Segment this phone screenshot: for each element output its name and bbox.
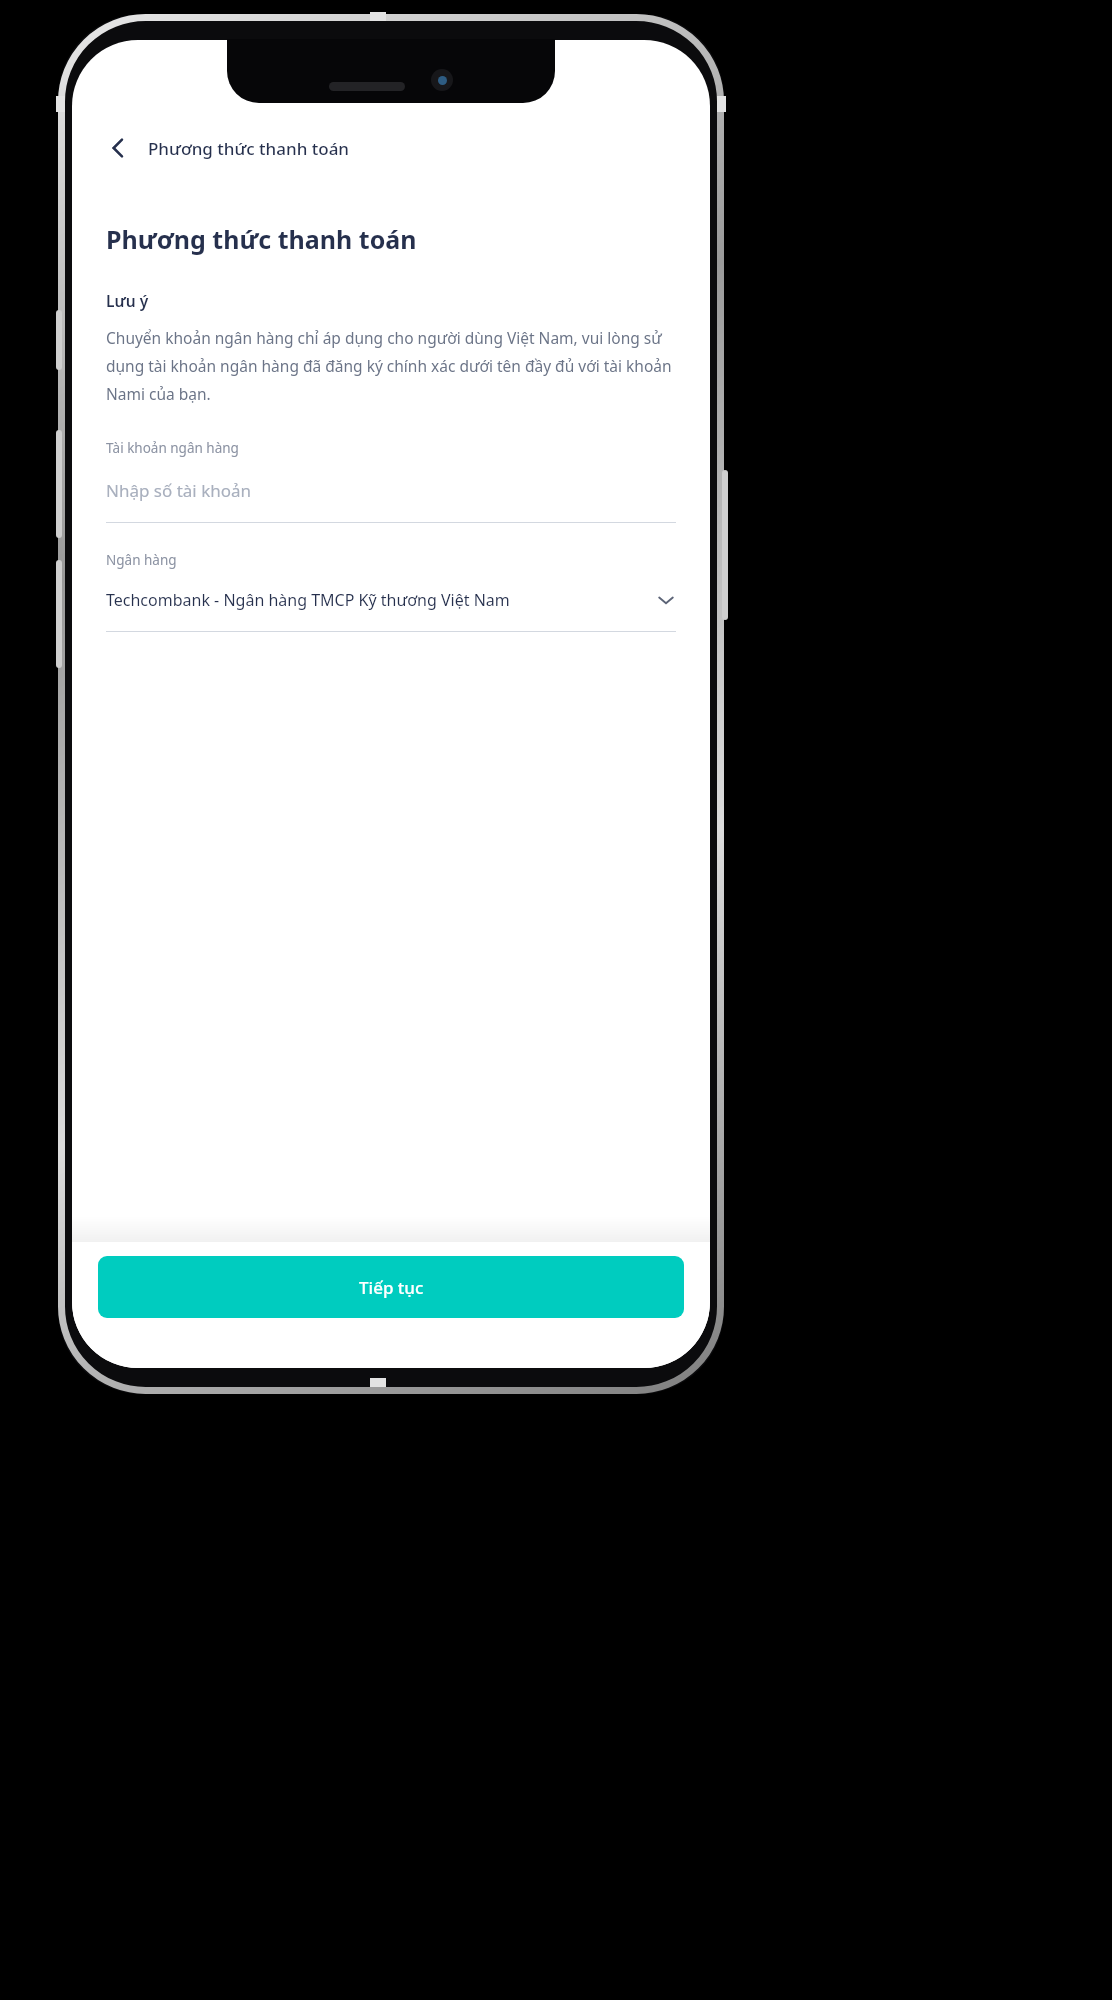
staticText: Chuyển khoản ngân hàng chỉ áp dụng cho n… — [106, 327, 686, 405]
button[interactable]: Back — [98, 128, 138, 168]
staticText: Lưu ý — [106, 290, 149, 311]
staticText: Tiếp tục — [359, 1276, 424, 1299]
staticText: Phương thức thanh toán — [148, 137, 350, 160]
staticText: Phương thức thanh toán — [106, 222, 417, 256]
staticText: Tài khoản ngân hàng — [106, 439, 239, 457]
staticText: Nhập số tài khoản — [106, 479, 252, 502]
staticText: Ngân hàng — [106, 551, 177, 569]
button[interactable]: Nhập số tài khoản — [106, 457, 676, 523]
button[interactable]: Tiếp tục — [98, 1256, 684, 1318]
button[interactable]: Techcombank - Ngân hàng TMCP Kỹ thương V… — [106, 569, 676, 632]
staticText: Techcombank - Ngân hàng TMCP Kỹ thương V… — [106, 589, 648, 611]
